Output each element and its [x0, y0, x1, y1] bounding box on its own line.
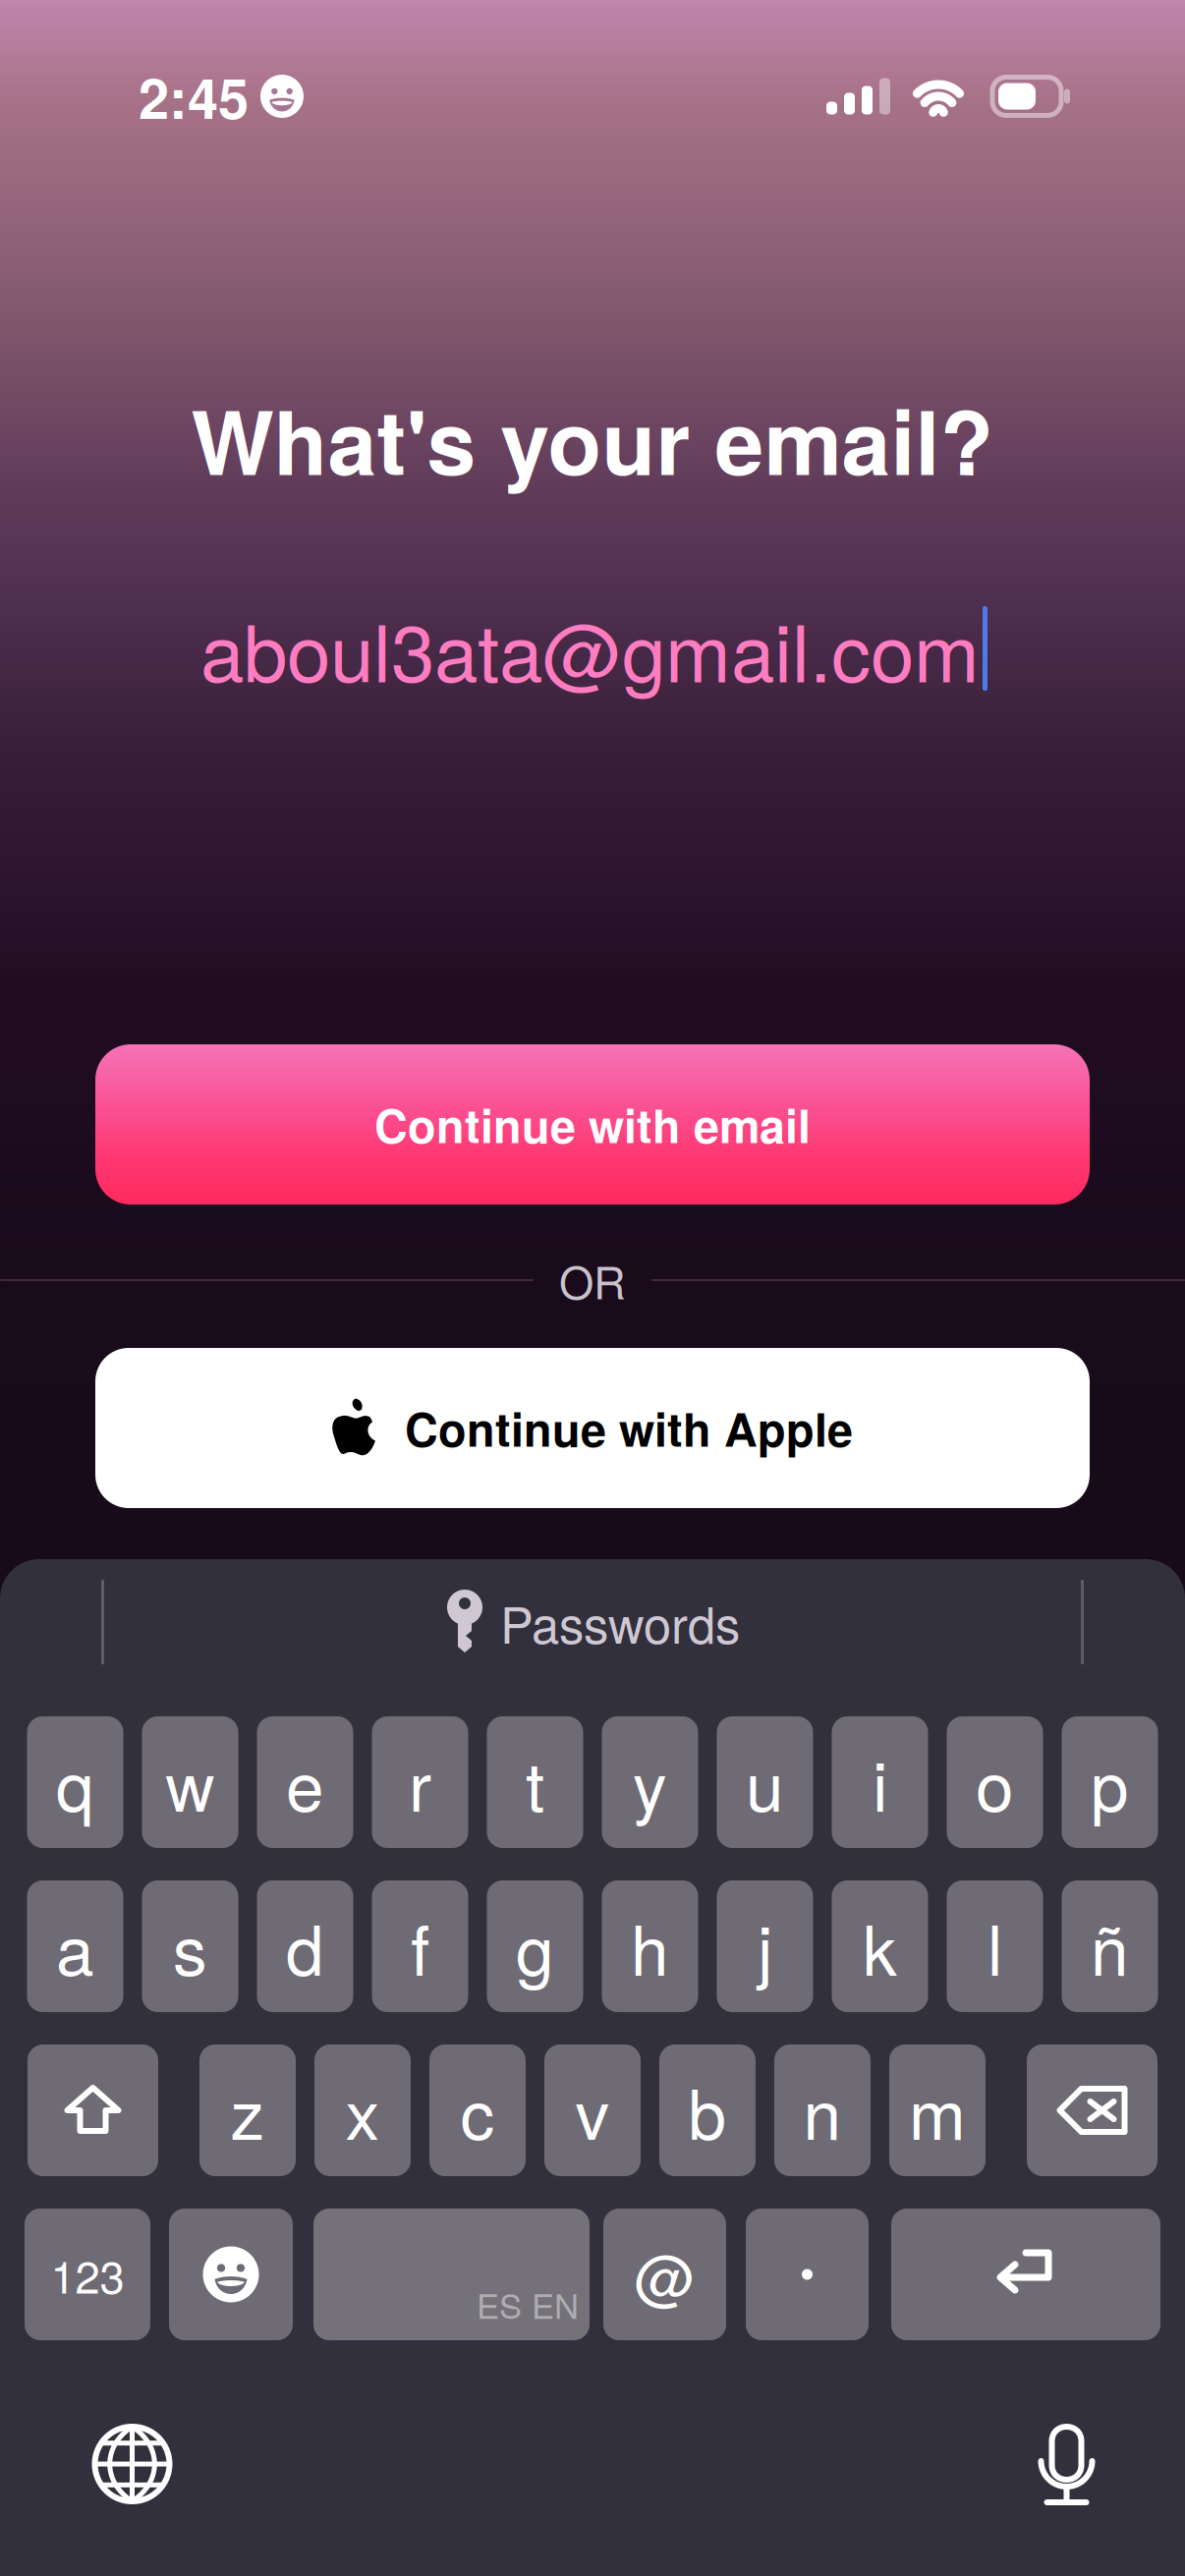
staticText: ñ: [1091, 1898, 1129, 1995]
button[interactable]: Dictation: [1039, 2421, 1094, 2507]
staticText: e: [286, 1733, 324, 1831]
staticText: Continue with email: [374, 1092, 811, 1157]
staticText: v: [575, 2062, 610, 2159]
button[interactable]: l: [947, 1880, 1043, 2012]
staticText: aboul3ata@gmail.com: [200, 592, 980, 705]
button[interactable]: d: [257, 1880, 353, 2012]
button[interactable]: Continue with email: [95, 1044, 1090, 1204]
button[interactable]: z: [199, 2044, 296, 2176]
button[interactable]: y: [602, 1716, 698, 1848]
staticText: m: [909, 2062, 966, 2159]
button[interactable]: u: [717, 1716, 813, 1848]
staticText: @: [634, 2231, 695, 2318]
button[interactable]: ñ: [1062, 1880, 1158, 2012]
staticText: x: [345, 2062, 380, 2159]
staticText: h: [631, 1898, 669, 1995]
button[interactable]: Return: [891, 2209, 1160, 2340]
button[interactable]: n: [774, 2044, 871, 2176]
staticText: n: [803, 2062, 842, 2159]
button[interactable]: i: [832, 1716, 928, 1848]
button[interactable]: q: [27, 1716, 123, 1848]
button[interactable]: x: [314, 2044, 411, 2176]
button[interactable]: Delete: [1027, 2044, 1157, 2176]
button[interactable]: s: [142, 1880, 238, 2012]
staticText: u: [746, 1733, 784, 1831]
button[interactable]: g: [487, 1880, 583, 2012]
button[interactable]: Passwords: [445, 1578, 740, 1666]
staticText: z: [230, 2062, 265, 2159]
button[interactable]: Shift: [28, 2044, 158, 2176]
staticText: OR: [559, 1248, 626, 1312]
button[interactable]: Emoji: [169, 2209, 293, 2340]
button[interactable]: b: [659, 2044, 756, 2176]
button[interactable]: h: [602, 1880, 698, 2012]
staticText: 123: [51, 2242, 124, 2306]
staticText: Continue with Apple: [405, 1395, 853, 1461]
staticText: i: [873, 1733, 887, 1831]
button[interactable]: k: [832, 1880, 928, 2012]
staticText: 2:45: [139, 57, 249, 136]
button[interactable]: c: [429, 2044, 526, 2176]
staticText: t: [526, 1733, 544, 1831]
staticText: w: [166, 1733, 215, 1831]
button[interactable]: j: [717, 1880, 813, 2012]
button[interactable]: t: [487, 1716, 583, 1848]
button[interactable]: f: [372, 1880, 468, 2012]
button[interactable]: o: [947, 1716, 1043, 1848]
button[interactable]: e: [257, 1716, 353, 1848]
staticText: a: [56, 1898, 94, 1995]
staticText: y: [633, 1733, 667, 1831]
staticText: q: [56, 1733, 94, 1831]
staticText: g: [516, 1898, 554, 1995]
button[interactable]: Space: [313, 2209, 590, 2340]
button[interactable]: Continue with Apple: [95, 1348, 1090, 1508]
button[interactable]: a: [27, 1880, 123, 2012]
button[interactable]: p: [1062, 1716, 1158, 1848]
staticText: o: [976, 1733, 1014, 1831]
staticText: b: [688, 2062, 727, 2159]
staticText: k: [863, 1898, 897, 1995]
button[interactable]: Numbers: [25, 2209, 150, 2340]
staticText: j: [758, 1898, 772, 1995]
staticText: p: [1091, 1733, 1129, 1831]
staticText: d: [286, 1898, 324, 1995]
button[interactable]: Next keyboard: [91, 2423, 173, 2505]
staticText: l: [987, 1898, 1002, 1995]
staticText: r: [409, 1733, 431, 1831]
button[interactable]: v: [544, 2044, 641, 2176]
staticText: What's your email?: [191, 376, 994, 502]
staticText: Passwords: [500, 1586, 740, 1658]
button[interactable]: w: [142, 1716, 238, 1848]
staticText: ES EN: [477, 2280, 579, 2328]
button[interactable]: r: [372, 1716, 468, 1848]
button[interactable]: At sign: [603, 2209, 726, 2340]
button[interactable]: m: [889, 2044, 986, 2176]
staticText: c: [460, 2062, 495, 2159]
staticText: s: [173, 1898, 207, 1995]
staticText: f: [411, 1898, 429, 1995]
button[interactable]: Period: [746, 2209, 869, 2340]
